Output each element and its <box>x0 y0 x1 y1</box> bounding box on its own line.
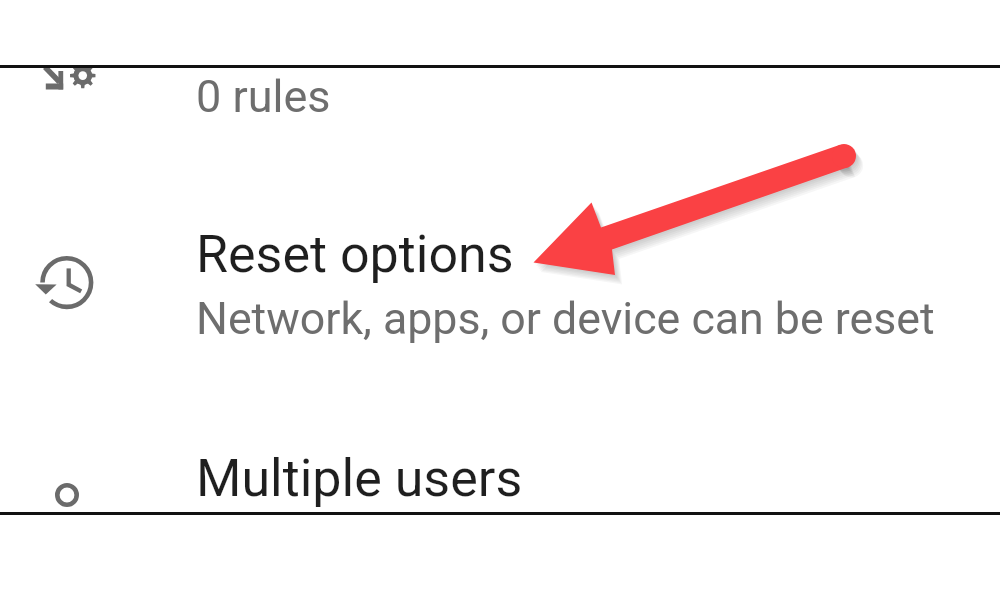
staticText: Multiple users <box>196 448 523 509</box>
button[interactable]: Multiple users <box>0 420 1000 512</box>
other: Multiple users <box>44 472 90 512</box>
staticText: 0 rules <box>196 70 331 123</box>
other: Automatic rules <box>40 67 100 118</box>
other: Reset options <box>34 250 104 320</box>
other: Annotation arrow <box>0 0 1000 600</box>
staticText: Reset options <box>196 224 514 285</box>
staticText: Network, apps, or device can be reset <box>196 293 935 345</box>
button[interactable]: Reset options <box>0 200 1000 380</box>
button[interactable]: Automatic rules <box>0 67 1000 187</box>
